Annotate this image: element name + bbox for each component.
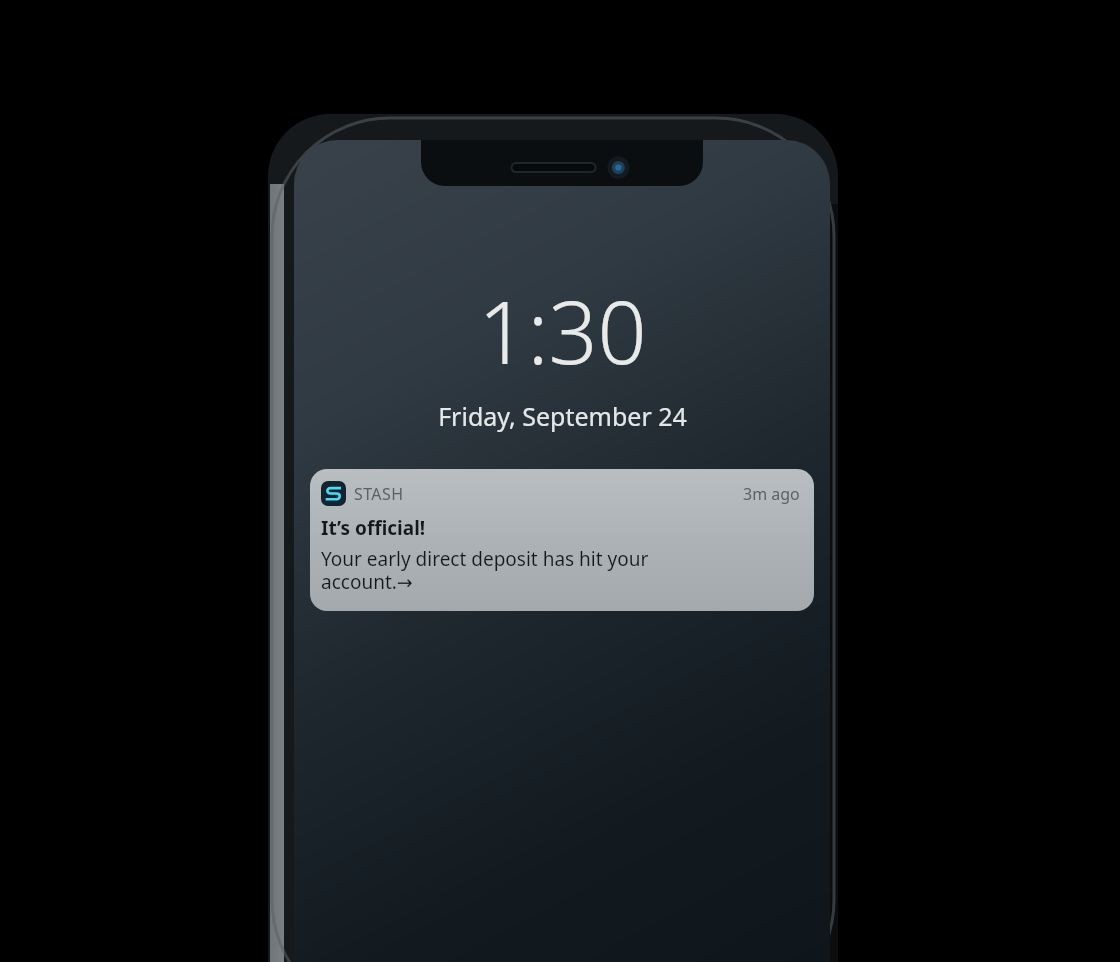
staticText: STASH xyxy=(354,483,404,505)
staticText: Your early direct deposit has hit your a… xyxy=(321,546,649,595)
staticText: It’s official! xyxy=(321,515,426,541)
staticText: 1:30 xyxy=(478,272,647,389)
other: Stash app icon xyxy=(321,481,346,506)
staticText: Friday, September 24 xyxy=(438,399,687,433)
staticText: 3m ago xyxy=(743,483,800,505)
button[interactable]: Stash app icon xyxy=(310,469,814,611)
